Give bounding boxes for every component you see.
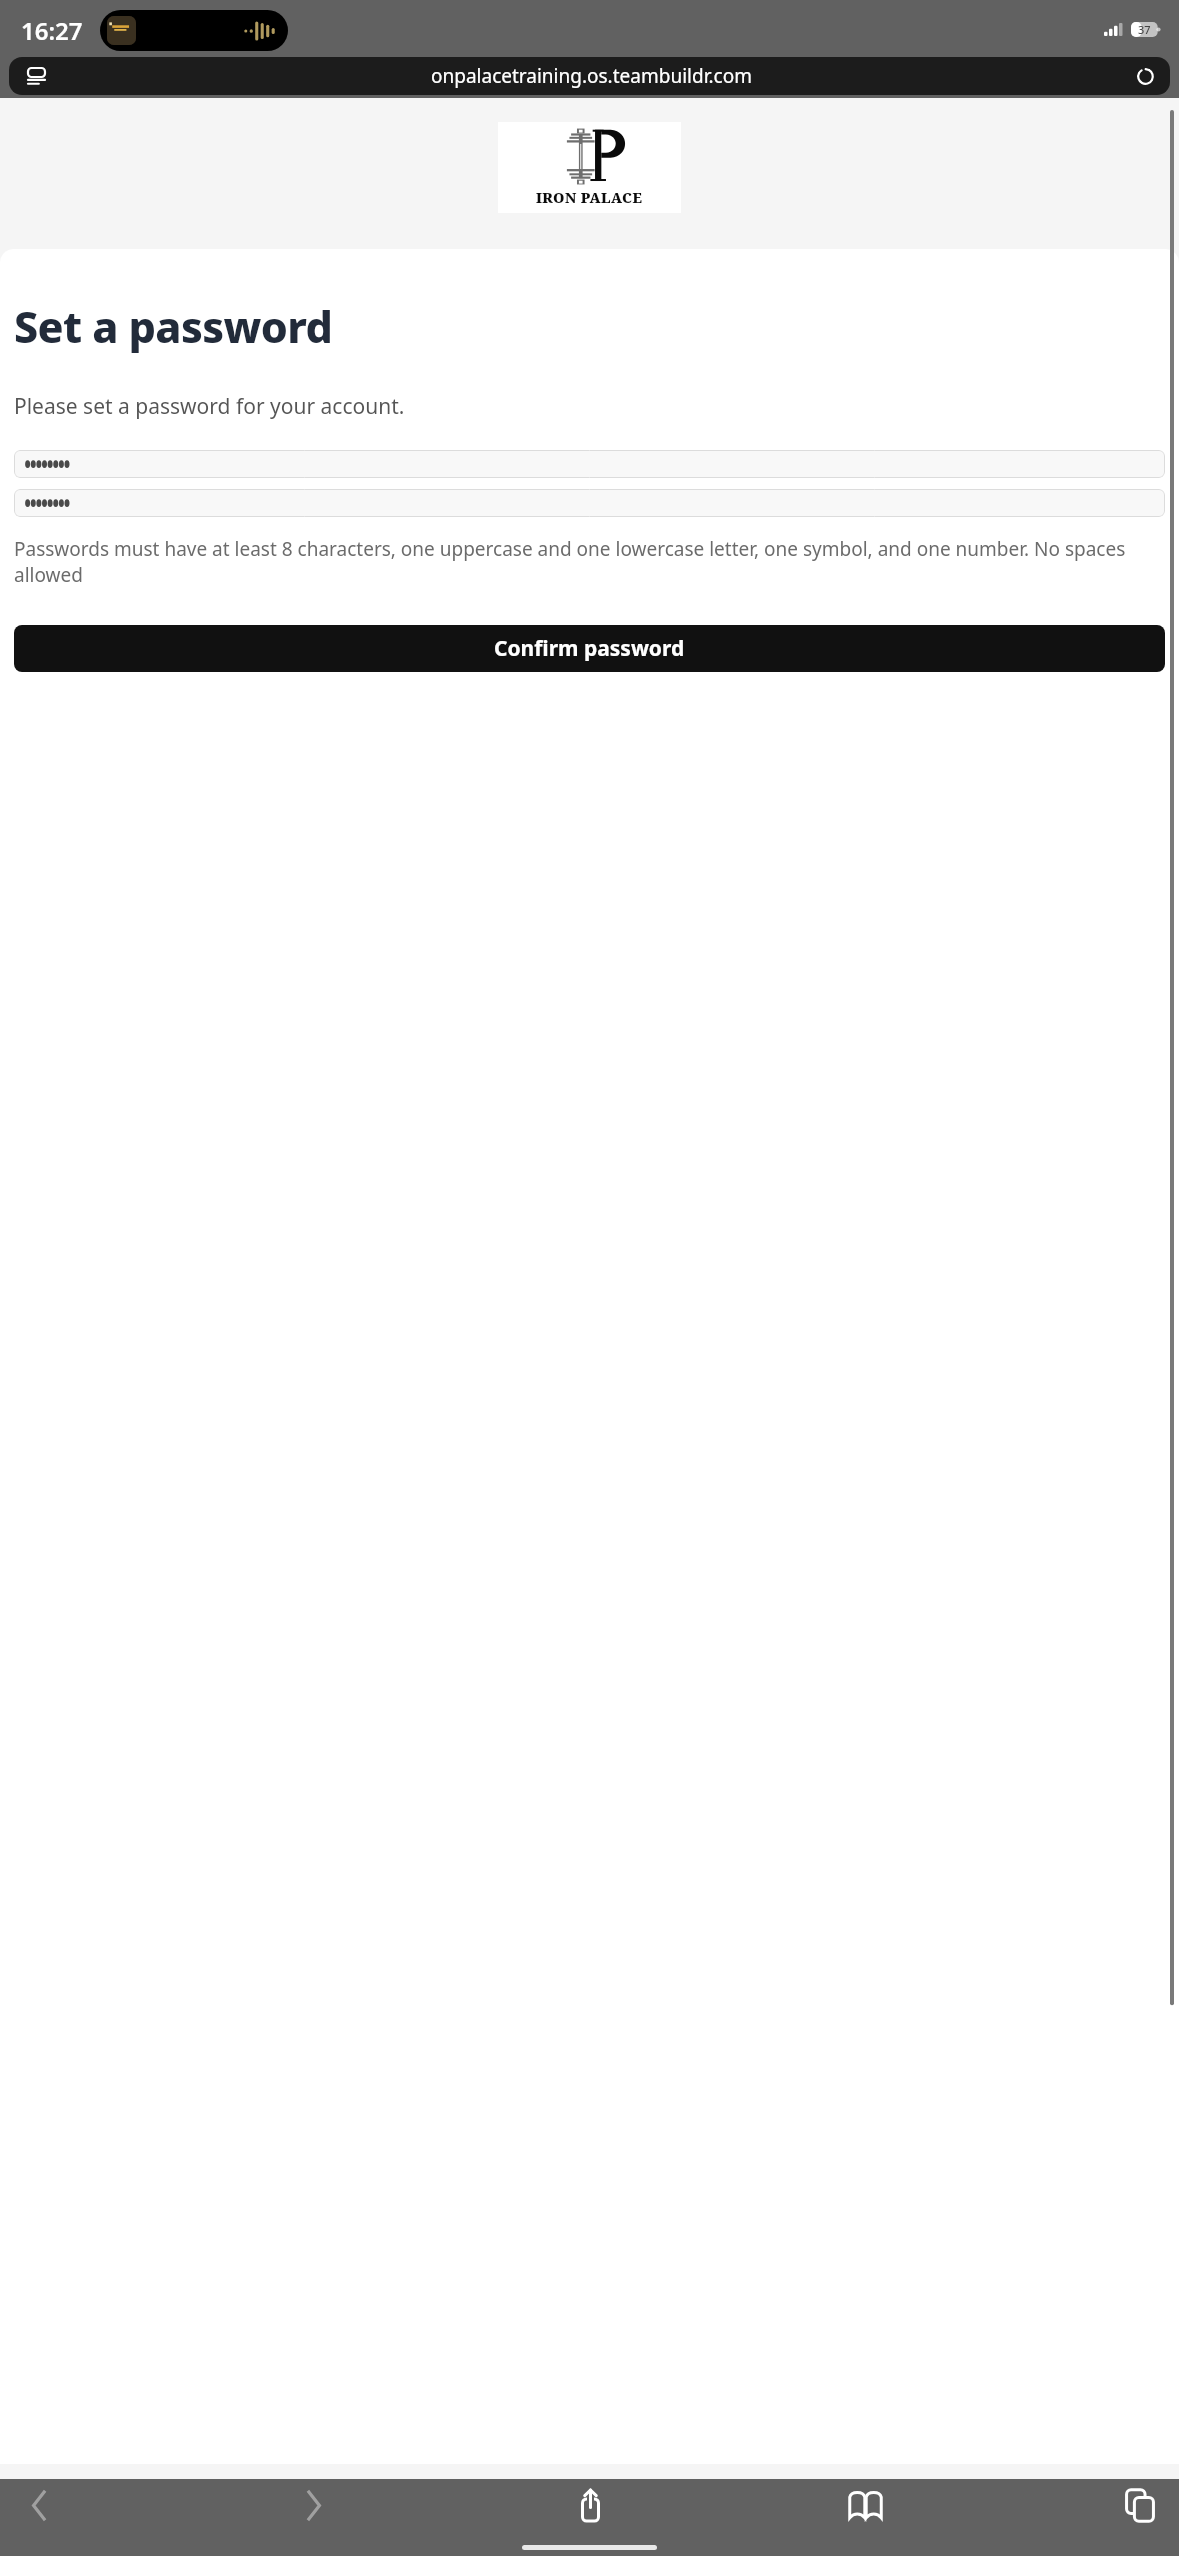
staticText: onpalacetraining.os.teambuildr.com <box>431 63 752 89</box>
button[interactable]: Bookmarks <box>834 2479 896 2531</box>
staticText: Passwords must have at least 8 character… <box>14 536 1165 588</box>
staticText: IRON PALACE <box>536 188 643 207</box>
button[interactable]: Back <box>8 2479 70 2531</box>
button[interactable]: Password field <box>14 450 1165 478</box>
staticText: Please set a password for your account. <box>14 392 405 421</box>
button[interactable]: Password field <box>14 489 1165 517</box>
button[interactable]: Tabs <box>1109 2479 1171 2531</box>
button[interactable]: Reload <box>1130 61 1160 91</box>
staticText: Set a password <box>14 297 333 356</box>
button[interactable]: Forward <box>283 2479 345 2531</box>
button[interactable]: Page settings <box>9 57 1170 95</box>
button[interactable]: Share <box>559 2479 621 2531</box>
staticText: 16:27 <box>21 14 83 47</box>
button[interactable]: Page settings <box>19 59 53 93</box>
staticText: Confirm password <box>494 634 685 663</box>
staticText: 37 <box>1138 22 1151 37</box>
button[interactable]: Confirm password <box>14 625 1165 672</box>
